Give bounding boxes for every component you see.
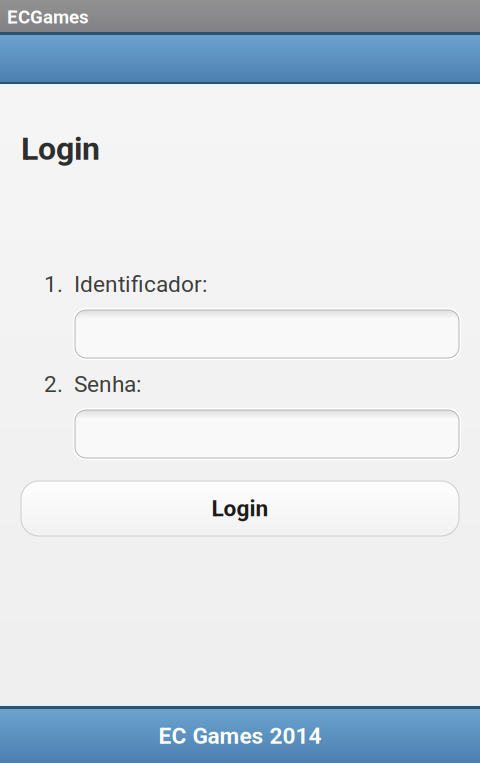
staticText: Login <box>21 130 100 167</box>
staticText: Identificador: <box>74 271 207 298</box>
button[interactable]: Senha <box>75 410 459 458</box>
staticText: 1. <box>44 271 63 298</box>
staticText: Senha: <box>74 371 141 398</box>
button[interactable]: Identificador <box>75 310 459 358</box>
staticText: EC Games 2014 <box>158 723 321 749</box>
button[interactable]: Login <box>21 481 459 536</box>
staticText: ECGames <box>7 6 89 28</box>
staticText: Login <box>211 495 268 522</box>
staticText: 2. <box>44 371 63 398</box>
